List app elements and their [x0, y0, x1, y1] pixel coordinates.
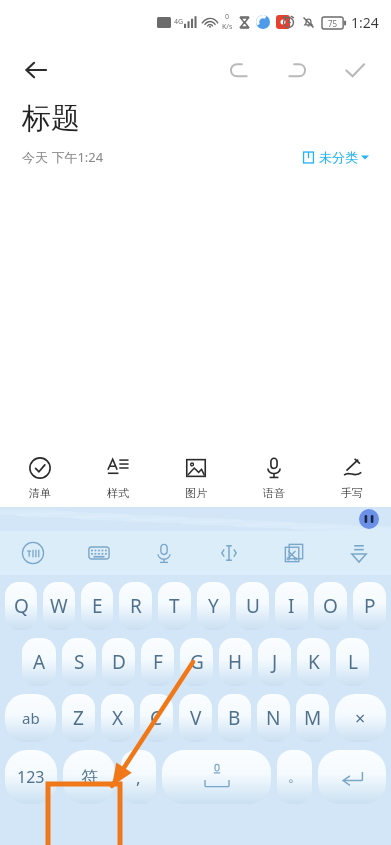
button[interactable]: Undo — [217, 48, 261, 92]
staticText: Y — [208, 593, 219, 619]
staticText: C — [150, 705, 163, 731]
button[interactable]: Move cursor — [196, 531, 261, 575]
button[interactable]: 图片 — [157, 449, 235, 507]
staticText: 图片 — [185, 486, 207, 500]
staticText: 清单 — [29, 486, 51, 500]
staticText: R — [130, 593, 142, 619]
button[interactable]: P — [353, 582, 386, 630]
staticText: P — [364, 593, 376, 619]
button[interactable]: Enter — [318, 750, 386, 804]
staticText: I — [288, 593, 295, 619]
staticText: E — [92, 593, 103, 619]
button[interactable]: R — [119, 582, 152, 630]
staticText: 0 — [225, 12, 230, 22]
staticText: Z — [73, 705, 84, 731]
button[interactable]: Clipboard — [261, 531, 326, 575]
button[interactable]: Space — [162, 750, 271, 804]
button[interactable]: S — [62, 638, 96, 686]
button[interactable]: W — [43, 582, 75, 630]
staticText: 1:24 — [351, 13, 379, 32]
staticText: N — [266, 705, 281, 731]
button[interactable]: I — [275, 582, 308, 630]
staticText: G — [190, 649, 204, 675]
button[interactable]: X — [101, 694, 134, 742]
button[interactable]: N — [257, 694, 290, 742]
button[interactable]: Q — [5, 582, 37, 630]
staticText: B — [228, 705, 241, 731]
button[interactable]: ab — [5, 694, 56, 742]
button[interactable]: 未分类 — [302, 145, 369, 169]
button[interactable]: J — [258, 638, 291, 686]
button[interactable]: E — [81, 582, 113, 630]
button[interactable]: U — [236, 582, 269, 630]
staticText: 标题 — [22, 100, 80, 137]
button[interactable]: Keyboard layout — [66, 531, 131, 575]
button[interactable]: 手写 — [313, 449, 391, 507]
staticText: X — [112, 705, 124, 731]
staticText: J — [272, 649, 278, 675]
button[interactable]: Emoji — [359, 509, 379, 529]
button[interactable]: 符 — [63, 750, 115, 804]
button[interactable]: 清单 — [0, 449, 79, 507]
button[interactable]: 语音 — [235, 449, 313, 507]
staticText: S — [74, 649, 85, 675]
staticText: F — [153, 649, 163, 675]
staticText: H — [228, 649, 243, 675]
button[interactable]: M — [296, 694, 329, 742]
staticText: 今天 下午1:24 — [22, 148, 104, 166]
button[interactable]: A — [22, 638, 56, 686]
button[interactable]: , — [121, 750, 156, 804]
staticText: K/s — [222, 22, 233, 32]
button[interactable]: Hide keyboard — [326, 531, 391, 575]
staticText: L — [348, 649, 358, 675]
button[interactable]: V — [179, 694, 212, 742]
button[interactable]: B — [218, 694, 251, 742]
button[interactable]: H — [219, 638, 252, 686]
staticText: 符 — [81, 767, 98, 788]
button[interactable]: 123 — [5, 750, 57, 804]
button[interactable]: Z — [62, 694, 95, 742]
button[interactable]: G — [180, 638, 213, 686]
staticText: × — [355, 706, 366, 731]
button[interactable]: L — [336, 638, 369, 686]
staticText: ab — [22, 708, 40, 728]
button[interactable]: T — [158, 582, 191, 630]
staticText: 语音 — [263, 486, 285, 500]
staticText: W — [50, 593, 68, 619]
button[interactable]: C — [140, 694, 173, 742]
staticText: D — [112, 649, 126, 675]
staticText: 未分类 — [319, 149, 358, 165]
staticText: V — [190, 705, 202, 731]
button[interactable]: Redo — [275, 48, 319, 92]
staticText: 样式 — [107, 486, 129, 500]
button[interactable]: Y — [197, 582, 230, 630]
staticText: U — [246, 593, 260, 619]
button[interactable]: D — [102, 638, 135, 686]
staticText: M — [304, 705, 322, 731]
button[interactable]: O — [314, 582, 347, 630]
staticText: 4G — [174, 17, 184, 27]
staticText: 123 — [17, 766, 45, 788]
button[interactable]: Done — [333, 48, 377, 92]
staticText: T — [169, 593, 180, 619]
staticText: , — [136, 766, 141, 789]
button[interactable]: Back — [14, 48, 58, 92]
button[interactable]: K — [297, 638, 330, 686]
button[interactable]: 。 — [277, 750, 312, 804]
button[interactable]: 样式 — [79, 449, 157, 507]
staticText: 。 — [288, 768, 302, 786]
staticText: 手写 — [341, 486, 363, 500]
staticText: Q — [14, 593, 29, 619]
button[interactable]: Input method — [0, 531, 66, 575]
staticText: O — [323, 593, 338, 619]
button[interactable]: Delete — [335, 694, 386, 742]
staticText: K — [308, 649, 320, 675]
button[interactable]: F — [141, 638, 174, 686]
staticText: A — [33, 649, 46, 675]
staticText: 75 — [328, 18, 338, 29]
button[interactable]: Voice input — [131, 531, 196, 575]
